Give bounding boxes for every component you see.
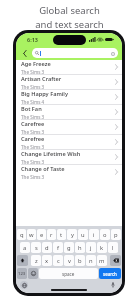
staticText: i [93,231,95,239]
button[interactable]: a [20,242,30,253]
button[interactable]: h [75,242,85,253]
staticText: and text search [35,18,104,31]
button[interactable]: j [86,242,96,253]
staticText: c [57,257,60,265]
button[interactable]: u [78,229,88,240]
staticText: The Sims 3 [21,174,45,179]
button[interactable]: q [17,229,26,240]
button[interactable]: x [42,255,52,266]
staticText: d [45,244,49,252]
button[interactable]: Clear text [32,48,118,58]
staticText: The Sims 3 [21,69,45,74]
staticText: e [40,231,44,239]
staticText: Big Happy Family [21,90,69,98]
staticText: g [67,244,71,252]
staticText: Age Freeze [21,60,51,68]
button[interactable]: t [57,229,66,240]
staticText: q [20,231,24,239]
button[interactable]: y [67,229,77,240]
button[interactable]: c [53,255,63,266]
button[interactable]: d [42,242,52,253]
button[interactable]: Big Happy Family [16,90,122,104]
staticText: space [62,271,75,277]
button[interactable]: n [86,255,96,266]
staticText: n [89,257,93,265]
staticText: a [23,244,27,252]
staticText: Global search [39,4,100,17]
staticText: j [90,244,92,252]
button[interactable]: Carefree [16,120,122,134]
button[interactable]: p [111,229,121,240]
button[interactable]: Back [20,48,30,58]
button[interactable]: Artisan Crafter [16,75,122,89]
staticText: y [71,231,74,239]
button[interactable]: m [97,255,107,266]
staticText: search [103,271,117,277]
button[interactable]: f [53,242,63,253]
staticText: f [57,244,59,252]
staticText: 123 [18,271,26,277]
staticText: The Sims 3 [21,144,45,149]
button[interactable]: s [31,242,41,253]
staticText: Change of Taste [21,165,65,173]
button[interactable]: search [99,268,121,279]
staticText: m [99,257,105,265]
button[interactable]: z [31,255,41,266]
button[interactable]: Carefree [16,135,122,149]
staticText: t [60,231,63,239]
staticText: Change Lifetime Wish [21,150,81,158]
staticText: The Sims 3 [21,129,45,134]
staticText: 6:13 [27,36,38,43]
staticText: b [78,257,82,265]
button[interactable]: b [75,255,85,266]
button[interactable]: Clear text [110,51,115,56]
button[interactable]: k [97,242,107,253]
staticText: r [50,231,53,239]
staticText: w [29,231,34,239]
staticText: p [114,231,118,239]
button[interactable]: l [108,242,118,253]
staticText: The Sims 3 [21,84,45,89]
button[interactable]: e [37,229,46,240]
button[interactable]: Emoji [28,268,38,279]
staticText: Carefree [21,120,45,128]
staticText: k [100,244,104,252]
staticText: Artisan Crafter [21,75,62,83]
button[interactable]: Dictation [109,281,117,289]
button[interactable]: Backspace [110,255,121,266]
button[interactable]: Change Lifetime Wish [16,150,122,164]
staticText: z [35,257,38,265]
staticText: v [68,257,71,265]
staticText: The Sims 4 [21,99,45,104]
staticText: The Sims 3 [21,114,45,119]
staticText: s [35,244,38,252]
button[interactable]: o [100,229,110,240]
button[interactable]: Bot Fan [16,105,122,119]
button[interactable]: v [64,255,74,266]
staticText: Carefree [21,135,45,143]
button[interactable]: Age Freeze [16,60,122,74]
button[interactable]: Change of Taste [16,165,122,179]
button[interactable]: r [47,229,56,240]
staticText: The Sims 3 [21,159,45,164]
button[interactable]: g [64,242,74,253]
button[interactable]: space [39,268,98,279]
button[interactable]: Shift [17,255,28,266]
button[interactable]: Change keyboard [20,281,28,289]
staticText: x [45,257,49,265]
button[interactable]: w [27,229,36,240]
button[interactable]: i [89,229,99,240]
staticText: l [112,244,114,252]
button[interactable]: 123 [17,268,27,279]
staticText: u [81,231,85,239]
staticText: h [78,244,82,252]
staticText: Bot Fan [21,105,42,113]
staticText: o [103,231,107,239]
